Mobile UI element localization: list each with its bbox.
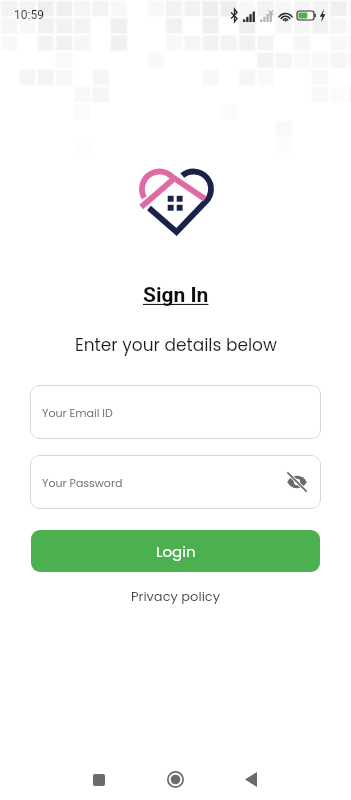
- button[interactable]: Your Password: [30, 455, 321, 509]
- staticText: Enter your details below: [75, 333, 277, 357]
- button[interactable]: Sign In: [143, 283, 209, 308]
- button[interactable]: Login: [31, 530, 320, 572]
- button[interactable]: Home: [137, 757, 213, 800]
- button[interactable]: Back: [213, 757, 289, 800]
- button[interactable]: Privacy policy: [131, 587, 221, 605]
- button[interactable]: Recents: [61, 757, 137, 800]
- button[interactable]: Your Email ID: [30, 385, 321, 439]
- button[interactable]: Show password: [282, 467, 312, 497]
- staticText: 10:59: [14, 8, 44, 22]
- staticText: Your Email ID: [42, 405, 113, 420]
- staticText: Login: [156, 541, 196, 562]
- staticText: Your Password: [42, 475, 123, 490]
